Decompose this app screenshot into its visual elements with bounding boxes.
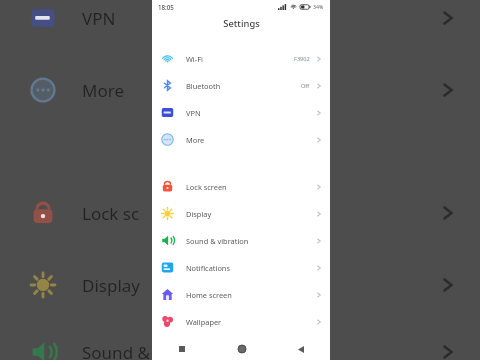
button[interactable]: Notifications (152, 254, 330, 281)
staticText: Bluetooth (186, 81, 221, 91)
staticText: 18:05 (158, 3, 174, 11)
staticText: F3902 (294, 55, 310, 63)
button[interactable]: Sound & vibration (152, 227, 330, 254)
staticText: VPN (186, 108, 201, 118)
button[interactable]: More (152, 126, 330, 153)
staticText: Lock sc (82, 202, 140, 225)
staticText: More (186, 135, 205, 145)
button[interactable]: Bluetooth (152, 72, 330, 99)
staticText: More (82, 79, 124, 102)
button[interactable]: Home (212, 338, 271, 360)
staticText: Wi-Fi (186, 54, 203, 64)
staticText: Off (301, 82, 310, 90)
button[interactable]: VPN (152, 99, 330, 126)
staticText: Wallpaper (186, 317, 222, 327)
button[interactable]: Recents (152, 338, 212, 360)
staticText: Sound & vibration (186, 236, 249, 246)
staticText: Display (186, 209, 212, 219)
button[interactable]: Wi-Fi (152, 45, 330, 72)
staticText: VPN (82, 7, 116, 30)
button[interactable]: Back (271, 338, 330, 360)
button[interactable]: Display (152, 200, 330, 227)
staticText: 34% (313, 3, 324, 10)
button[interactable]: Home screen (152, 281, 330, 308)
staticText: Display (82, 274, 140, 297)
staticText: Lock screen (186, 182, 227, 192)
button[interactable]: Wallpaper (152, 308, 330, 335)
staticText: Home screen (186, 290, 232, 300)
button[interactable]: Lock screen (152, 173, 330, 200)
staticText: Settings (223, 17, 260, 30)
staticText: Notifications (186, 263, 230, 273)
staticText: Sound & (82, 341, 150, 360)
